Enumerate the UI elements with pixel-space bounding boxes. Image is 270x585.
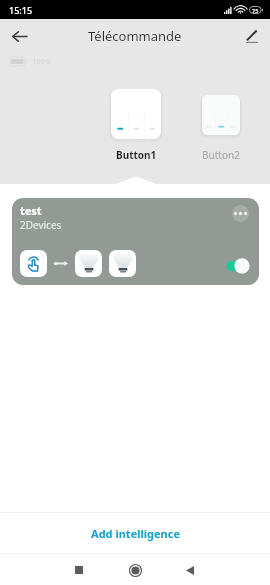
button[interactable]: More options [232, 205, 249, 222]
button[interactable]: Button2 device [202, 95, 240, 135]
button[interactable]: Button1 [106, 148, 166, 162]
button[interactable]: Edit [237, 22, 265, 50]
staticText: Add intelligence [91, 526, 180, 541]
button[interactable]: Toggle scene [224, 256, 250, 276]
staticText: Button2 [202, 148, 240, 162]
staticText: Button1 [116, 148, 157, 162]
button[interactable]: Back [176, 556, 204, 584]
staticText: 75 [252, 7, 259, 14]
staticText: Télécommande [88, 27, 182, 45]
button[interactable]: Add intelligence [0, 513, 270, 553]
button[interactable]: Recents [65, 556, 93, 584]
button[interactable]: test [12, 198, 259, 285]
staticText: 2Devices [20, 218, 62, 232]
button[interactable]: Button2 [191, 148, 251, 162]
staticText: test [20, 203, 42, 218]
staticText: 15:15 [9, 4, 33, 16]
button[interactable]: Button1 device [111, 89, 161, 139]
button[interactable]: Back [5, 22, 33, 50]
staticText: 100% [32, 56, 52, 66]
button[interactable]: Home [121, 556, 149, 584]
